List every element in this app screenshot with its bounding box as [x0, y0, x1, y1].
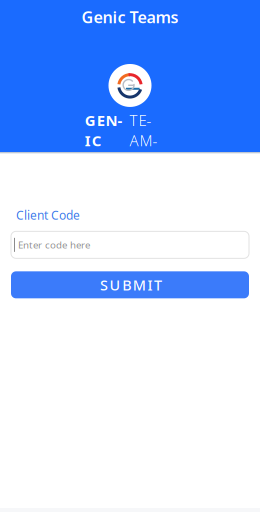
- button[interactable]: SUBMIT: [11, 271, 249, 298]
- staticText: SUBMIT: [100, 275, 162, 295]
- staticText: Enter code here: [18, 238, 90, 251]
- staticText: Genic Teams: [81, 6, 178, 28]
- staticText: Client Code: [16, 207, 80, 223]
- staticText: TEAMS: [129, 110, 161, 151]
- staticText: GENIC: [85, 110, 129, 151]
